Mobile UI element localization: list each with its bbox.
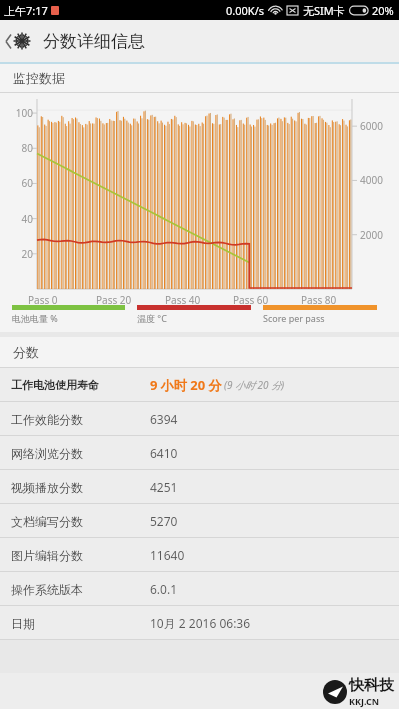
button[interactable]: 视频播放分数 xyxy=(0,470,399,504)
staticText: 电池电量 % xyxy=(12,312,58,324)
staticText: Pass 0 xyxy=(28,293,58,307)
button[interactable]: 工作电池使用寿命 xyxy=(0,368,399,402)
staticText: Pass 40 xyxy=(165,293,201,307)
staticText: 温度 °C xyxy=(137,312,167,324)
button[interactable]: 文档编写分数 xyxy=(0,504,399,538)
staticText: 上午7:17 xyxy=(4,3,48,18)
button[interactable]: 图片编辑分数 xyxy=(0,538,399,572)
staticText: 图片编辑分数 xyxy=(11,548,83,563)
staticText: 分数详细信息 xyxy=(43,31,145,52)
staticText: 11640 xyxy=(150,547,185,563)
staticText: (9 小时 20 分) xyxy=(224,378,285,392)
staticText: 6000 xyxy=(360,119,383,133)
staticText: Pass 20 xyxy=(96,293,132,307)
staticText: 操作系统版本 xyxy=(11,582,83,597)
staticText: 6.0.1 xyxy=(150,581,178,597)
staticText: 10月 2 2016 06:36 xyxy=(150,615,251,631)
staticText: Score per pass xyxy=(263,312,325,324)
staticText: 5270 xyxy=(150,513,178,529)
button[interactable]: 工作效能分数 xyxy=(0,402,399,436)
staticText: 工作效能分数 xyxy=(11,412,83,427)
staticText: 40 xyxy=(5,212,33,226)
staticText: 视频播放分数 xyxy=(11,480,83,495)
staticText: 2000 xyxy=(360,228,383,242)
staticText: 监控数据 xyxy=(13,70,65,86)
staticText: 工作电池使用寿命 xyxy=(11,378,99,392)
staticText: 4000 xyxy=(360,173,383,187)
staticText: Pass 60 xyxy=(233,293,269,307)
staticText: 快科技 xyxy=(349,676,394,695)
staticText: 9 小时 20 分 xyxy=(150,376,222,394)
staticText: Pass 80 xyxy=(301,293,337,307)
staticText: 60 xyxy=(5,176,33,190)
button[interactable]: 返回 xyxy=(5,20,31,62)
staticText: 6394 xyxy=(150,411,178,427)
staticText: 0.00K/s xyxy=(226,3,264,18)
button[interactable]: 网络浏览分数 xyxy=(0,436,399,470)
staticText: 日期 xyxy=(11,616,35,631)
staticText: KKJ.CN xyxy=(349,695,380,707)
staticText: 80 xyxy=(5,141,33,155)
button[interactable]: 操作系统版本 xyxy=(0,572,399,606)
button[interactable]: 日期 xyxy=(0,606,399,640)
staticText: 无SIM卡 xyxy=(303,3,345,18)
staticText: 分数 xyxy=(13,344,39,360)
staticText: 20% xyxy=(372,3,394,18)
staticText: 文档编写分数 xyxy=(11,514,83,529)
staticText: 网络浏览分数 xyxy=(11,446,83,461)
staticText: 100 xyxy=(5,106,33,120)
staticText: 4251 xyxy=(150,479,178,495)
staticText: 6410 xyxy=(150,445,178,461)
staticText: 20 xyxy=(5,247,33,261)
